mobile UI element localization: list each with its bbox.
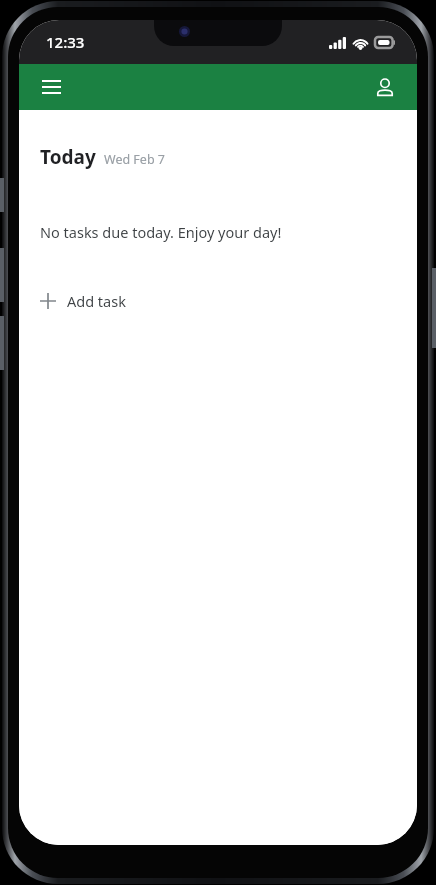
staticText: Add task (67, 291, 126, 311)
staticText: Wed Feb 7 (104, 151, 165, 168)
staticText: No tasks due today. Enjoy your day! (40, 222, 282, 242)
staticText: 12:33 (46, 32, 85, 52)
button[interactable]: Add task (40, 286, 396, 316)
staticText: Today (40, 144, 96, 170)
button[interactable]: Account (363, 65, 407, 109)
button[interactable]: Open navigation menu (29, 65, 73, 109)
